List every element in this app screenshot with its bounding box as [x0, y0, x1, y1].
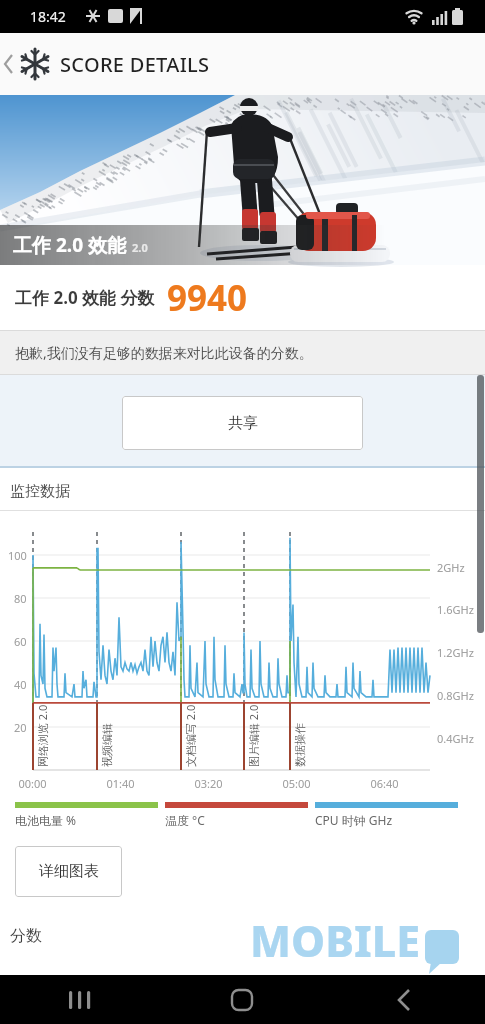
staticText: CPU 时钟 GHz — [315, 812, 393, 828]
staticText: 18:42 — [30, 7, 66, 26]
staticText: 共享 — [228, 414, 258, 433]
staticText: 电池电量 % — [15, 812, 77, 828]
button[interactable]: SCORE DETAILS — [0, 33, 485, 95]
button[interactable] — [161, 975, 323, 1024]
button[interactable]: 共享 — [122, 396, 363, 450]
staticText: 工作 2.0 效能 分数 — [15, 286, 155, 309]
staticText: 工作 2.0 效能 — [13, 232, 126, 258]
staticText: 抱歉,我们没有足够的数据来对比此设备的分数。 — [15, 343, 313, 362]
button[interactable] — [0, 975, 161, 1024]
button[interactable]: 详细图表 — [15, 846, 122, 897]
staticText: 2.0 — [132, 240, 148, 255]
staticText: 温度 °C — [165, 812, 205, 828]
staticText: MOBILE — [250, 911, 421, 970]
staticText: 分数 — [10, 926, 42, 946]
staticText: 9940 — [167, 274, 248, 322]
staticText: 监控数据 — [10, 482, 70, 501]
staticText: SCORE DETAILS — [60, 51, 210, 78]
button[interactable] — [323, 975, 485, 1024]
staticText: 详细图表 — [39, 862, 99, 881]
